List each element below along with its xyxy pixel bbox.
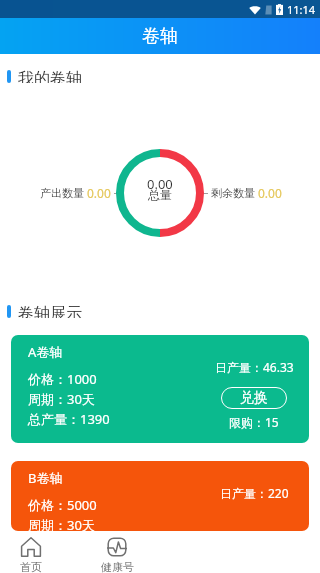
staticText: 限购：15 [229,414,279,430]
button[interactable]: 兑换 [221,387,287,409]
staticText: 价格：1000 [28,370,97,388]
staticText: 11:14 [287,2,316,17]
staticText: 周期：30天 [28,390,95,408]
staticText: 产出数量 [40,186,84,200]
staticText: 卷轴展示 [18,304,82,318]
staticText: 首页 [20,560,42,573]
button[interactable]: 健康号 [62,537,172,573]
staticText: 卷轴 [142,25,178,48]
staticText: B卷轴 [28,469,63,487]
staticText: 兑换 [240,389,268,407]
staticText: 我的卷轴 [18,69,82,83]
button[interactable]: A卷轴 [11,335,309,443]
button[interactable]: B卷轴 [11,461,309,531]
staticText: A卷轴 [28,343,63,361]
staticText: 剩余数量 [211,186,255,200]
staticText: 价格：5000 [28,496,97,514]
button[interactable]: 首页 [0,537,62,573]
staticText: 总量 [148,187,172,202]
staticText: 0.00 [258,185,282,201]
staticText: 日产量：220 [220,485,289,501]
staticText: 0.00 [147,175,173,193]
staticText: 总产量：1390 [28,410,110,428]
staticText: 0.00 [87,185,111,201]
staticText: 日产量：46.33 [215,359,294,375]
staticText: 健康号 [101,560,134,573]
staticText: 周期：30天 [28,516,95,531]
